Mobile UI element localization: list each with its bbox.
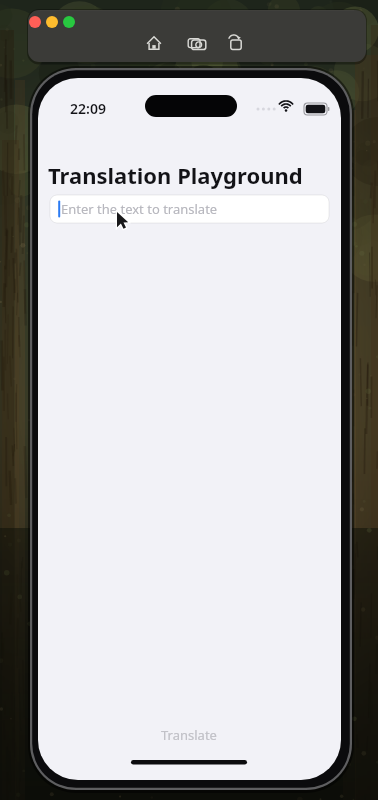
button[interactable]: Rotate device: [224, 32, 250, 56]
staticText: Enter the text to translate: [61, 200, 218, 218]
staticText: Translation Playground: [48, 160, 303, 190]
staticText: Translate: [161, 726, 217, 744]
button[interactable]: Enter the text to translate: [50, 195, 303, 223]
button[interactable]: Minimise window: [46, 16, 58, 28]
button[interactable]: Translate: [129, 722, 249, 748]
staticText: 22:09: [70, 99, 106, 118]
button[interactable]: Screenshot: [185, 32, 211, 56]
button[interactable]: Close window: [29, 16, 41, 28]
button[interactable]: Maximise window: [63, 16, 75, 28]
button[interactable]: Home: [142, 32, 168, 56]
